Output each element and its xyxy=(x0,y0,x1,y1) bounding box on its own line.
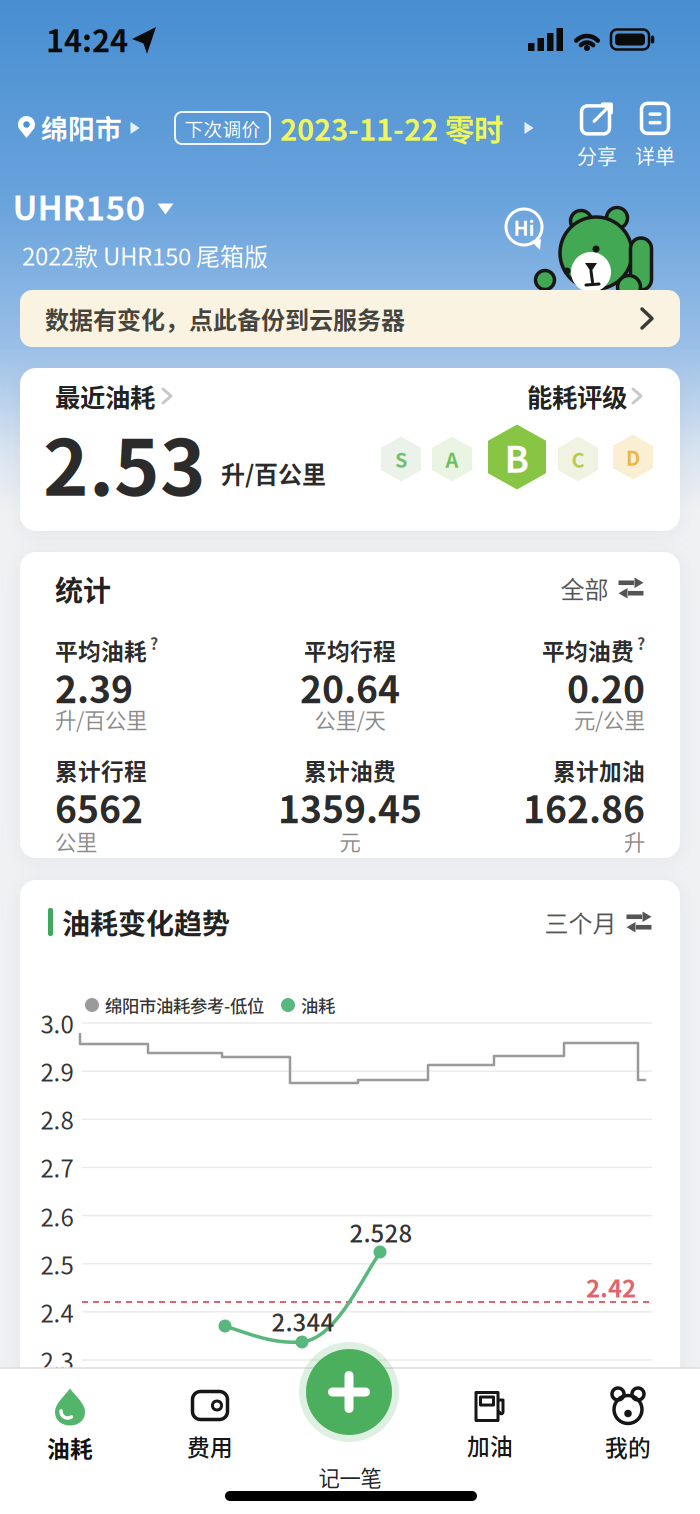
button[interactable]: 下次调价 xyxy=(175,107,503,149)
button[interactable]: 费用 xyxy=(187,1390,233,1462)
button[interactable]: 记一笔 xyxy=(306,1349,392,1435)
staticText: 20.64 xyxy=(300,661,400,713)
staticText: 油耗 xyxy=(47,1431,93,1463)
staticText: ? xyxy=(150,632,158,654)
staticText: 公里 xyxy=(55,826,97,856)
staticText: 下次调价 xyxy=(184,115,260,141)
staticText: 我的 xyxy=(605,1430,651,1462)
button[interactable]: 加油 xyxy=(467,1391,513,1461)
staticText: 3.0 xyxy=(40,1006,73,1040)
staticText: 升/百公里 xyxy=(55,704,147,734)
staticText: 详单 xyxy=(635,141,675,170)
staticText: 2.528 xyxy=(349,1215,412,1249)
staticText: UHR150 xyxy=(12,182,145,230)
staticText: S xyxy=(395,445,407,473)
button[interactable]: UHR150 xyxy=(12,182,173,230)
staticText: 元/公里 xyxy=(574,704,645,734)
staticText: 2.6 xyxy=(40,1199,73,1233)
staticText: 2.8 xyxy=(40,1102,73,1136)
staticText: 2.3 xyxy=(40,1343,73,1377)
staticText: 平均油耗 xyxy=(55,634,147,666)
staticText: 2.39 xyxy=(55,661,133,713)
staticText: 162.86 xyxy=(523,781,645,833)
staticText: 平均油费 xyxy=(542,634,634,666)
staticText: 最近油耗 xyxy=(55,378,155,414)
staticText: Hi xyxy=(513,213,534,241)
staticText: 14:24 xyxy=(46,17,128,61)
button[interactable]: 三个月 xyxy=(544,905,651,939)
staticText: 2.5 xyxy=(40,1247,73,1281)
staticText: D xyxy=(626,443,640,471)
button[interactable]: 数据有变化，点此备份到云服务器 xyxy=(20,290,680,347)
staticText: 平均行程 xyxy=(304,634,396,666)
staticText: 元 xyxy=(339,826,360,856)
staticText: 2.344 xyxy=(271,1304,334,1338)
staticText: 三个月 xyxy=(544,905,616,939)
staticText: C xyxy=(571,445,584,473)
staticText: 能耗评级 xyxy=(527,378,627,414)
staticText: ? xyxy=(637,632,645,654)
staticText: 全部 xyxy=(560,571,608,605)
button[interactable]: 最近油耗 xyxy=(55,378,171,414)
staticText: 统计 xyxy=(55,569,111,609)
staticText: 绵阳市油耗参考-低位 xyxy=(105,993,264,1017)
button[interactable]: 全部 xyxy=(560,571,643,605)
staticText: 升 xyxy=(624,826,645,856)
staticText: 2.7 xyxy=(40,1150,73,1184)
staticText: 1359.45 xyxy=(278,781,422,833)
button[interactable]: 油耗 xyxy=(47,1388,93,1463)
staticText: 0.20 xyxy=(567,661,645,713)
staticText: 加油 xyxy=(467,1429,513,1461)
staticText: 2022款 UHR150 尾箱版 xyxy=(22,238,268,272)
staticText: 2.9 xyxy=(40,1054,73,1088)
staticText: 公里/天 xyxy=(314,704,385,734)
staticText: 记一笔 xyxy=(318,1462,381,1492)
button[interactable]: 分享 xyxy=(577,102,617,170)
staticText: 6562 xyxy=(55,781,143,833)
staticText: 油耗 xyxy=(301,993,335,1017)
staticText: 2.4 xyxy=(40,1295,73,1329)
staticText: 2.53 xyxy=(43,407,206,517)
staticText: 费用 xyxy=(187,1430,233,1462)
staticText: 分享 xyxy=(577,141,617,170)
button[interactable]: 我的 xyxy=(605,1389,651,1462)
button[interactable]: 绵阳市 xyxy=(18,108,122,146)
staticText: A xyxy=(445,445,458,473)
staticText: 升/百公里 xyxy=(221,456,326,490)
button[interactable]: 详单 xyxy=(635,102,675,170)
staticText: 累计油费 xyxy=(304,754,396,786)
button[interactable]: 能耗评级 xyxy=(527,378,641,414)
staticText: 油耗变化趋势 xyxy=(62,902,230,942)
staticText: 2023-11-22 零时 xyxy=(280,107,503,149)
staticText: B xyxy=(504,432,529,482)
staticText: 2.42 xyxy=(586,1270,636,1304)
staticText: 绵阳市 xyxy=(41,108,122,146)
staticText: 累计行程 xyxy=(55,754,147,786)
staticText: 数据有变化，点此备份到云服务器 xyxy=(45,302,405,335)
staticText: 累计加油 xyxy=(553,754,645,786)
